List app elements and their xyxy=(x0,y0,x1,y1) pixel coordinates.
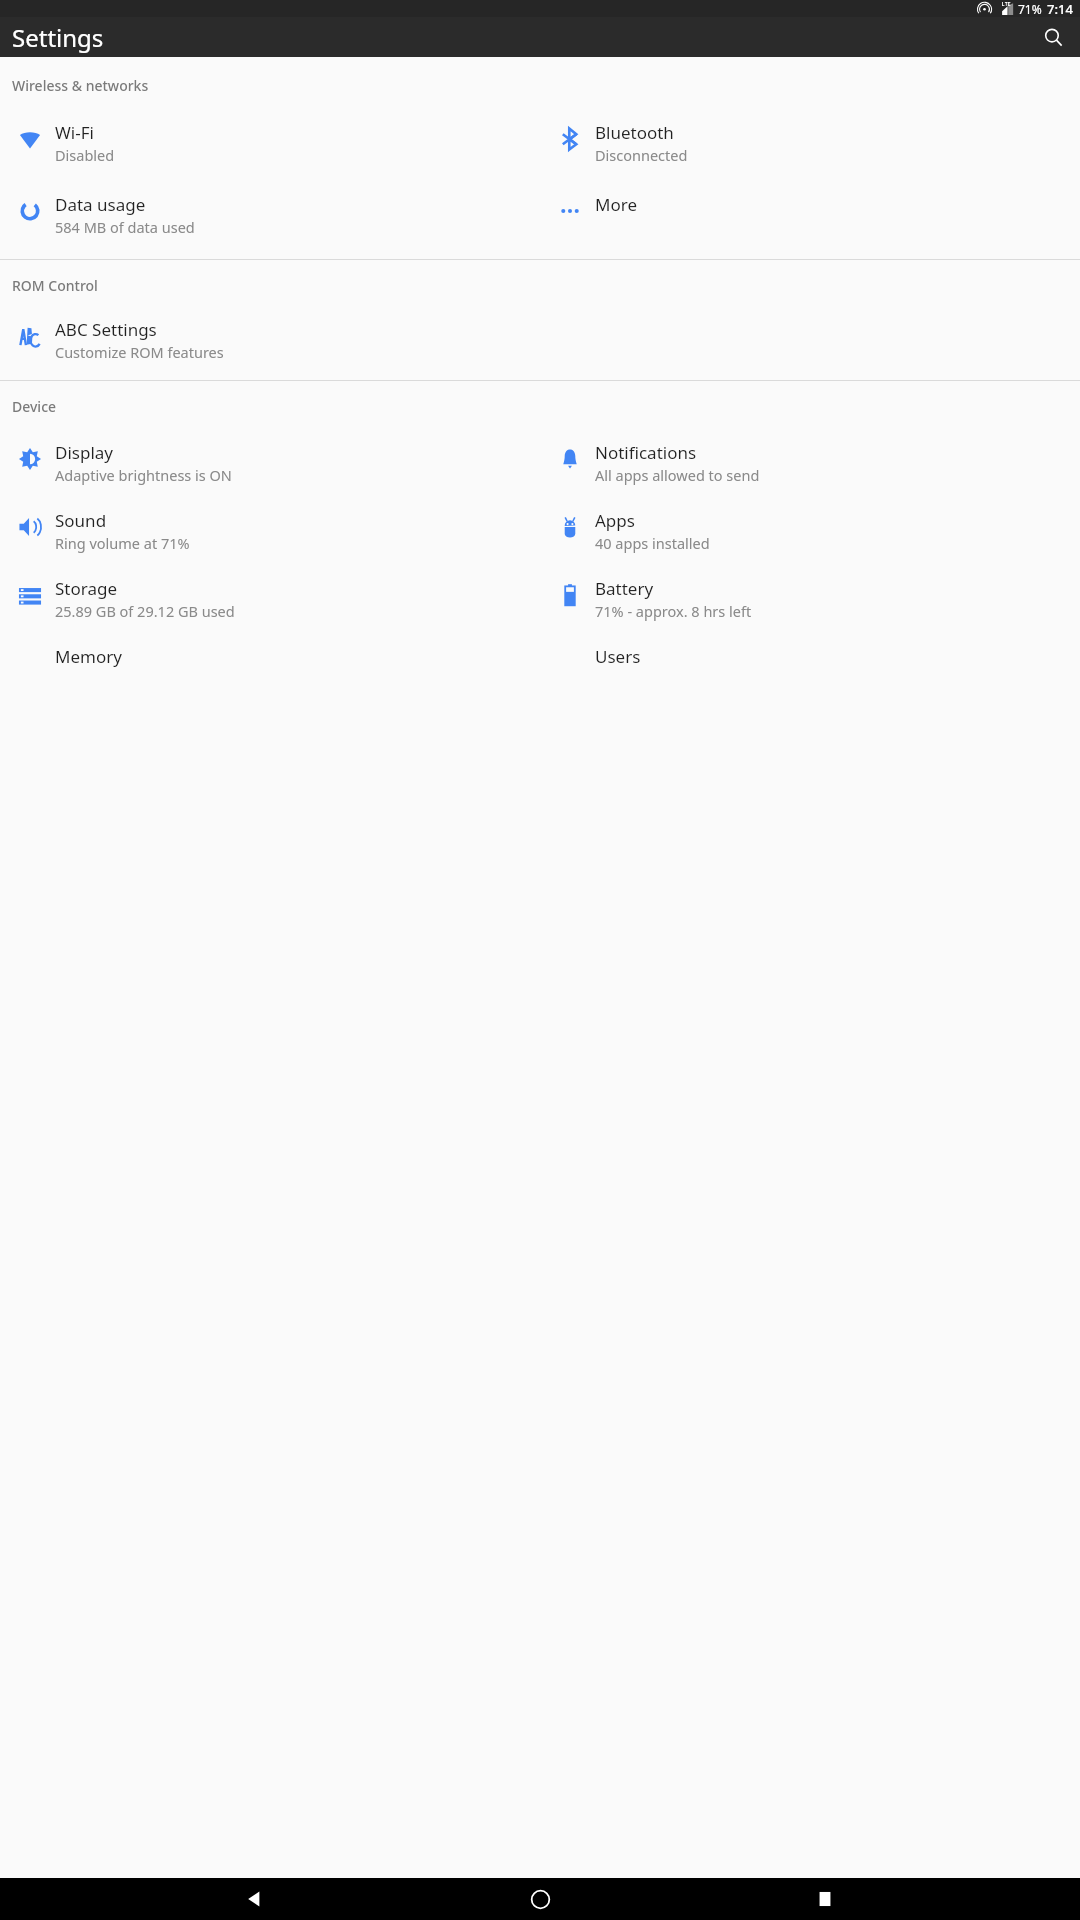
button[interactable]: More xyxy=(540,192,1080,230)
button[interactable]: Storage xyxy=(0,576,540,621)
button[interactable]: Notifications xyxy=(540,440,1080,485)
staticText: All apps allowed to send xyxy=(595,465,760,485)
button[interactable]: Wi-Fi xyxy=(0,120,540,165)
staticText: Battery xyxy=(595,577,654,600)
staticText: Storage xyxy=(55,577,118,600)
staticText: Ring volume at 71% xyxy=(55,533,190,553)
staticText: ROM Control xyxy=(12,276,98,295)
staticText: Data usage xyxy=(55,193,146,216)
button[interactable]: Search xyxy=(1036,20,1070,54)
button[interactable]: Back xyxy=(225,1878,285,1920)
staticText: Device xyxy=(12,397,57,416)
staticText: 40 apps installed xyxy=(595,533,710,553)
staticText: 584 MB of data used xyxy=(55,217,195,237)
button[interactable]: ABC Settings xyxy=(0,317,540,362)
staticText: Users xyxy=(595,645,641,668)
staticText: Display xyxy=(55,441,113,464)
staticText: Adaptive brightness is ON xyxy=(55,465,232,485)
staticText: 25.89 GB of 29.12 GB used xyxy=(55,601,235,621)
staticText: Wi-Fi xyxy=(55,121,94,144)
staticText: Apps xyxy=(595,509,635,532)
button[interactable]: Sound xyxy=(0,508,540,553)
staticText: ABC Settings xyxy=(55,318,157,341)
staticText: 71% - approx. 8 hrs left xyxy=(595,601,752,621)
staticText: Memory xyxy=(55,645,122,668)
button[interactable]: Apps xyxy=(540,508,1080,553)
staticText: Settings xyxy=(12,21,104,54)
staticText: Disabled xyxy=(55,145,115,165)
staticText: Notifications xyxy=(595,441,697,464)
button[interactable]: Memory xyxy=(0,644,540,682)
staticText: More xyxy=(595,193,637,216)
staticText: Bluetooth xyxy=(595,121,674,144)
button[interactable]: Recent apps xyxy=(795,1878,855,1920)
button[interactable]: Battery xyxy=(540,576,1080,621)
button[interactable]: Data usage xyxy=(0,192,540,237)
staticText: 7:14 xyxy=(1047,0,1073,17)
staticText: Wireless & networks xyxy=(12,76,149,95)
staticText: 71% xyxy=(1018,1,1042,17)
button[interactable]: Bluetooth xyxy=(540,120,1080,165)
staticText: Customize ROM features xyxy=(55,342,224,362)
button[interactable]: Home xyxy=(510,1878,570,1920)
staticText: Disconnected xyxy=(595,145,688,165)
button[interactable]: Display xyxy=(0,440,540,485)
staticText: Sound xyxy=(55,509,107,532)
button[interactable]: Users xyxy=(540,644,1080,682)
